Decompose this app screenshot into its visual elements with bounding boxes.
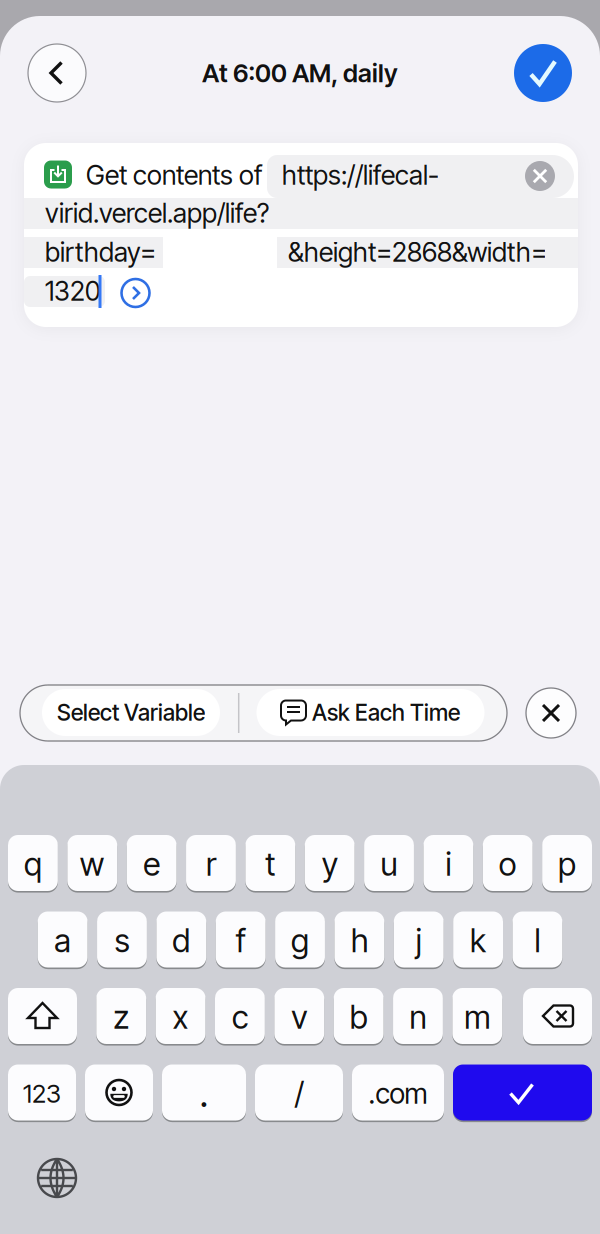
button[interactable]: q (8, 835, 58, 891)
button[interactable]: Ask Each Time (256, 689, 484, 736)
staticText: g (291, 921, 309, 960)
button[interactable]: Select Variable (42, 689, 220, 736)
button[interactable]: Return (453, 1064, 592, 1120)
staticText: d (172, 921, 190, 960)
staticText: y (322, 845, 338, 883)
staticText: b (350, 998, 368, 1036)
staticText: . (199, 1071, 208, 1116)
button[interactable]: g (275, 911, 325, 967)
button[interactable]: s (97, 911, 147, 967)
button[interactable]: Done (514, 44, 572, 102)
staticText: x (173, 998, 189, 1036)
button[interactable]: n (393, 988, 443, 1044)
button[interactable]: k (453, 911, 503, 967)
button[interactable]: u (364, 835, 414, 891)
staticText: c (232, 998, 248, 1036)
button[interactable]: Back (28, 44, 86, 102)
button[interactable]: y (305, 835, 355, 891)
button[interactable]: x (156, 988, 206, 1044)
button[interactable]: p (542, 835, 592, 891)
staticText: l (534, 921, 540, 960)
button[interactable]: b (334, 988, 384, 1044)
staticText: p (558, 845, 576, 883)
button[interactable]: m (452, 988, 502, 1044)
button[interactable]: Emoji (85, 1064, 153, 1120)
staticText: 123 (23, 1078, 61, 1109)
button[interactable]: j (394, 911, 444, 967)
staticText: f (236, 921, 246, 960)
button[interactable]: Shift (8, 988, 77, 1044)
staticText: birthday= (45, 236, 156, 268)
staticText: o (499, 845, 517, 883)
button[interactable]: v (274, 988, 324, 1044)
button[interactable]: Clear (525, 161, 555, 191)
button[interactable]: h (334, 911, 384, 967)
button[interactable]: .com (352, 1064, 444, 1120)
staticText: At 6:00 AM, daily (202, 58, 398, 88)
button[interactable]: 123 (8, 1064, 76, 1120)
staticText: https://lifecal- (282, 159, 439, 191)
staticText: i (445, 845, 451, 883)
button[interactable]: Expand (121, 279, 149, 307)
staticText: / (294, 1075, 303, 1112)
staticText: virid.vercel.app/life? (45, 197, 269, 229)
button[interactable]: z (96, 988, 146, 1044)
button[interactable]: t (245, 835, 295, 891)
staticText: n (409, 998, 426, 1036)
staticText: v (291, 998, 307, 1036)
staticText: Ask Each Time (312, 699, 460, 726)
staticText: z (113, 998, 129, 1036)
button[interactable]: c (215, 988, 265, 1044)
staticText: .com (368, 1077, 427, 1110)
button[interactable]: . (162, 1064, 246, 1120)
staticText: e (143, 845, 160, 883)
button[interactable]: f (216, 911, 266, 967)
button[interactable]: i (423, 835, 473, 891)
staticText: q (24, 845, 42, 883)
staticText: s (114, 921, 129, 960)
staticText: r (206, 845, 216, 883)
staticText: a (54, 921, 71, 960)
button[interactable]: e (127, 835, 177, 891)
staticText: Select Variable (57, 699, 205, 726)
staticText: w (80, 845, 105, 883)
staticText: j (416, 921, 422, 960)
button[interactable]: Delete (523, 988, 592, 1044)
staticText: u (380, 845, 397, 883)
button[interactable]: a (38, 911, 88, 967)
button[interactable]: Dismiss (526, 688, 576, 738)
button[interactable]: l (512, 911, 562, 967)
staticText: h (351, 921, 368, 960)
staticText: m (464, 998, 490, 1036)
staticText: t (265, 845, 275, 883)
button[interactable]: / (255, 1064, 343, 1120)
button[interactable]: d (156, 911, 206, 967)
button[interactable]: o (483, 835, 533, 891)
staticText: 1320 (45, 275, 100, 307)
staticText: k (470, 921, 486, 960)
button[interactable]: r (186, 835, 236, 891)
staticText: &height=2868&width= (288, 236, 547, 268)
staticText: Get contents of (86, 159, 262, 191)
button[interactable]: Next keyboard (35, 1156, 79, 1200)
button[interactable]: w (67, 835, 117, 891)
